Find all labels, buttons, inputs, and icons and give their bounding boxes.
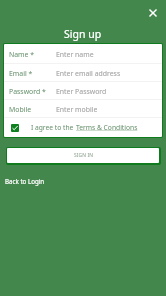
staticText: Enter mobile — [56, 105, 98, 114]
staticText: Terms & Conditions — [76, 123, 138, 132]
staticText: Email * — [9, 69, 33, 78]
button[interactable]: Mobile — [4, 100, 162, 117]
button[interactable]: Close — [144, 4, 161, 21]
button[interactable]: Back to Login — [2, 175, 48, 187]
staticText: Back to Login — [5, 177, 45, 185]
staticText: SIGN IN — [74, 152, 93, 159]
staticText: Enter Password — [56, 87, 107, 96]
button[interactable]: SIGN IN — [7, 148, 159, 163]
staticText: I agree to the — [31, 123, 76, 132]
button[interactable]: Password * — [4, 82, 162, 99]
button[interactable]: Email * — [4, 64, 162, 81]
staticText: Name * — [9, 50, 35, 59]
staticText: Enter name — [56, 50, 94, 59]
staticText: Password * — [9, 87, 46, 96]
button[interactable]: Name * — [4, 44, 162, 63]
button[interactable]: I agree to the — [4, 118, 162, 137]
staticText: Enter email address — [56, 69, 121, 78]
staticText: Mobile — [9, 105, 32, 114]
staticText: Sign up — [64, 27, 102, 41]
